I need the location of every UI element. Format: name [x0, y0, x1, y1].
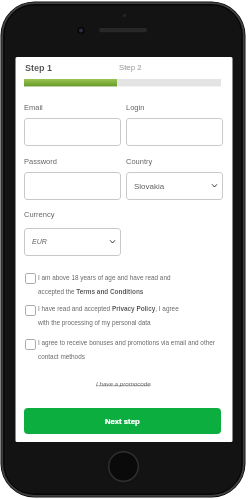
- staticText: Password: [24, 157, 57, 165]
- staticText: I have read and accepted Privacy Policy,…: [38, 305, 179, 312]
- staticText: Next step: [105, 417, 140, 426]
- staticText: I am above 18 years of age and have read…: [38, 274, 171, 281]
- staticText: accepted the Terms and Conditions: [38, 288, 144, 295]
- staticText: Step 2: [119, 63, 142, 72]
- staticText: Country: [126, 157, 153, 165]
- button[interactable]: [25, 305, 36, 316]
- button[interactable]: [25, 339, 36, 350]
- button[interactable]: [126, 118, 223, 146]
- staticText: Currency: [24, 210, 55, 218]
- staticText: Step 1: [25, 63, 53, 73]
- button[interactable]: [24, 118, 121, 146]
- button[interactable]: Next step: [24, 408, 221, 434]
- button[interactable]: I have a promocode: [96, 380, 151, 387]
- staticText: Slovakia: [134, 182, 165, 191]
- button[interactable]: EUR: [24, 228, 121, 256]
- button[interactable]: Slovakia: [126, 172, 223, 200]
- button[interactable]: [24, 172, 121, 200]
- staticText: Email: [24, 103, 43, 111]
- staticText: I agree to receive bonuses and promotion…: [38, 339, 215, 346]
- staticText: EUR: [32, 238, 47, 246]
- button[interactable]: [25, 273, 36, 284]
- staticText: Login: [126, 103, 145, 111]
- staticText: with the processing of my personal data: [38, 319, 151, 326]
- staticText: contact methods: [38, 353, 85, 360]
